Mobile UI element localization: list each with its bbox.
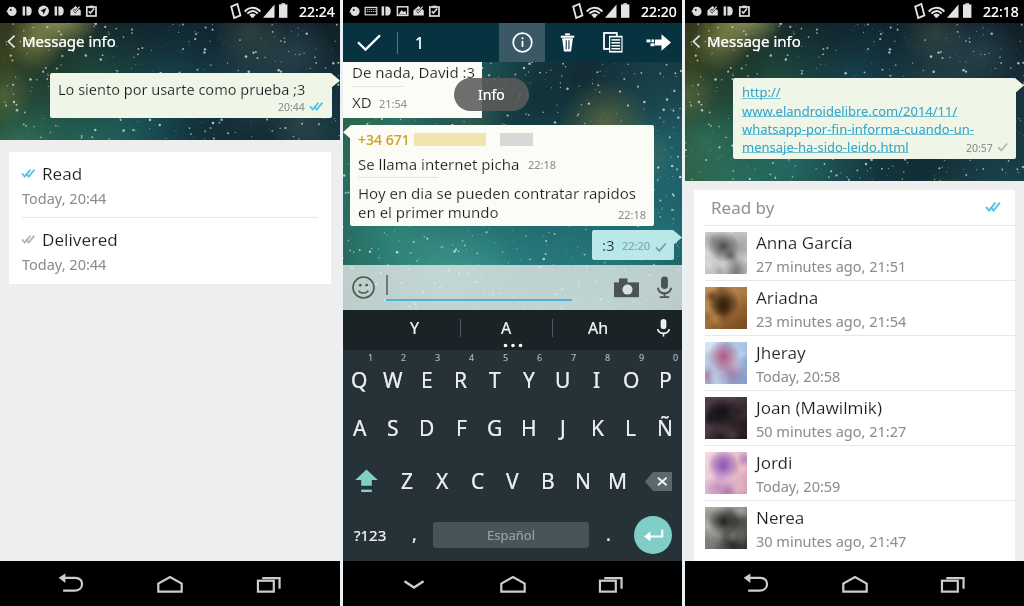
- button[interactable]: Ñ: [648, 402, 682, 455]
- staticText: Y: [523, 366, 535, 395]
- button[interactable]: Hide keyboard: [386, 564, 442, 604]
- button[interactable]: M: [600, 455, 635, 508]
- button[interactable]: F: [444, 402, 478, 455]
- staticText: Today, 20:58: [756, 366, 841, 386]
- button[interactable]: 5: [478, 350, 512, 402]
- staticText: O: [623, 366, 640, 395]
- button[interactable]: Back: [728, 564, 784, 604]
- staticText: .: [606, 522, 611, 547]
- button[interactable]: H: [512, 402, 546, 455]
- staticText: E: [421, 366, 433, 395]
- button[interactable]: Jordi: [694, 446, 1015, 500]
- staticText: http:// www.elandroidelibre.com/2014/11/…: [742, 83, 975, 155]
- button[interactable]: Voice message: [657, 276, 672, 299]
- button[interactable]: A: [461, 310, 552, 345]
- staticText: 22:20: [622, 238, 651, 253]
- button[interactable]: G: [478, 402, 512, 455]
- staticText: Today, 20:44: [22, 254, 107, 274]
- button[interactable]: Jheray: [694, 336, 1015, 390]
- button[interactable]: Y: [369, 310, 460, 345]
- staticText: +34 671: [358, 130, 410, 149]
- staticText: I: [593, 366, 601, 395]
- staticText: 2: [401, 351, 407, 363]
- button[interactable]: 6: [512, 350, 546, 402]
- button[interactable]: B: [530, 455, 565, 508]
- button[interactable]: C: [460, 455, 495, 508]
- button[interactable]: L: [614, 402, 648, 455]
- staticText: W: [383, 366, 403, 395]
- staticText: 6: [537, 351, 543, 363]
- button[interactable]: V: [495, 455, 530, 508]
- button[interactable]: ?123: [343, 508, 398, 561]
- button[interactable]: S: [376, 402, 410, 455]
- button[interactable]: Recents: [925, 564, 981, 604]
- button[interactable]: Delivered: [9, 218, 331, 284]
- button[interactable]: 0: [648, 350, 682, 402]
- button[interactable]: 9: [614, 350, 648, 402]
- staticText: R: [454, 366, 468, 395]
- button[interactable]: 1: [343, 350, 376, 402]
- button[interactable]: Home: [142, 564, 198, 604]
- button[interactable]: Ah: [553, 310, 644, 345]
- button[interactable]: Enter: [624, 508, 682, 561]
- button[interactable]: Recents: [583, 564, 639, 604]
- staticText: De nada, David :3: [352, 62, 476, 82]
- staticText: Ariadna: [756, 286, 819, 309]
- button[interactable]: Delete: [545, 23, 590, 62]
- button[interactable]: Home: [485, 564, 541, 604]
- staticText: 4: [469, 351, 475, 363]
- staticText: 22:18: [528, 157, 557, 172]
- button[interactable]: X: [425, 455, 460, 508]
- button[interactable]: Shift: [343, 455, 390, 508]
- staticText: Español: [487, 526, 535, 544]
- button[interactable]: Español: [433, 522, 589, 548]
- button[interactable]: J: [546, 402, 580, 455]
- button[interactable]: Nerea: [694, 501, 1015, 555]
- button[interactable]: Forward: [635, 23, 682, 62]
- button[interactable]: Backspace: [635, 455, 682, 508]
- button[interactable]: 2: [376, 350, 410, 402]
- button[interactable]: Emoji: [352, 276, 375, 299]
- button[interactable]: ,: [398, 508, 430, 561]
- button[interactable]: N: [565, 455, 600, 508]
- button[interactable]: Recents: [241, 564, 297, 604]
- staticText: Message info: [707, 31, 801, 51]
- staticText: Read: [42, 162, 83, 185]
- staticText: Jordi: [756, 451, 793, 474]
- button[interactable]: Read: [9, 152, 331, 217]
- button[interactable]: 4: [444, 350, 478, 402]
- staticText: C: [471, 467, 485, 496]
- staticText: Ah: [588, 317, 609, 339]
- button[interactable]: Back: [43, 564, 99, 604]
- button[interactable]: Home: [827, 564, 883, 604]
- staticText: Se llama internet picha: [358, 154, 520, 174]
- staticText: P: [659, 366, 672, 395]
- button[interactable]: A: [343, 402, 376, 455]
- button[interactable]: Copy: [590, 23, 635, 62]
- staticText: N: [575, 467, 591, 496]
- button[interactable]: Voice input: [644, 310, 682, 345]
- button[interactable]: Info: [499, 23, 545, 62]
- button[interactable]: Anna García: [694, 226, 1015, 280]
- button[interactable]: Message info: [685, 23, 1024, 59]
- staticText: 20:57: [966, 141, 993, 155]
- button[interactable]: 7: [546, 350, 580, 402]
- staticText: 27 minutes ago, 21:51: [756, 256, 907, 276]
- staticText: 7: [571, 351, 577, 363]
- button[interactable]: Message info: [0, 23, 340, 59]
- button[interactable]: Z: [390, 455, 425, 508]
- button[interactable]: D: [410, 402, 444, 455]
- button[interactable]: 8: [580, 350, 614, 402]
- staticText: 21:54: [379, 96, 408, 111]
- button[interactable]: Ariadna: [694, 281, 1015, 335]
- staticText: :3: [602, 235, 615, 255]
- staticText: Today, 20:59: [756, 476, 841, 496]
- staticText: S: [387, 414, 399, 443]
- button[interactable]: .: [592, 508, 624, 561]
- button[interactable]: Done: [343, 23, 499, 62]
- staticText: Delivered: [42, 228, 118, 251]
- button[interactable]: K: [580, 402, 614, 455]
- button[interactable]: 3: [410, 350, 444, 402]
- button[interactable]: Joan (Mawilmik): [694, 391, 1015, 445]
- button[interactable]: Camera: [614, 278, 639, 298]
